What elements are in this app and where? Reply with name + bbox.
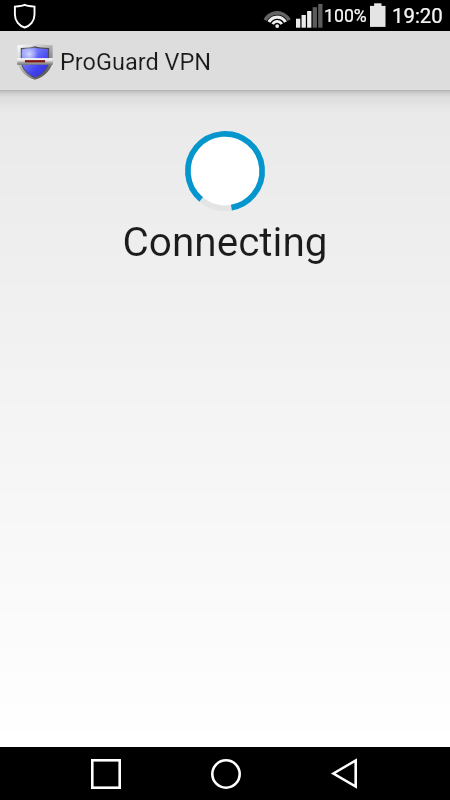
button[interactable]: Recent apps <box>69 747 143 800</box>
button[interactable]: Back <box>307 747 381 800</box>
staticText: 100% <box>324 6 367 27</box>
staticText: Connecting <box>122 218 328 265</box>
staticText: ProGuard VPN <box>60 48 212 76</box>
staticText: 19:20 <box>392 4 443 28</box>
button[interactable]: Connecting <box>122 131 328 265</box>
button[interactable]: Home <box>189 747 263 800</box>
